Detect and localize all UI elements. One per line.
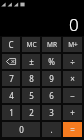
staticText: 1 bbox=[9, 107, 14, 118]
staticText: MC bbox=[26, 40, 37, 49]
staticText: 2 bbox=[29, 107, 34, 118]
staticText: C bbox=[8, 39, 14, 50]
button[interactable]: C bbox=[2, 37, 20, 52]
button[interactable]: % bbox=[42, 54, 61, 69]
button[interactable]: 1 bbox=[2, 105, 20, 120]
button[interactable]: M+ bbox=[63, 37, 82, 52]
button[interactable]: MC bbox=[22, 37, 40, 52]
button[interactable]: 9 bbox=[42, 71, 61, 86]
staticText: 5 bbox=[29, 90, 34, 101]
staticText: 0 bbox=[19, 124, 24, 135]
staticText: + bbox=[70, 107, 75, 118]
staticText: 3 bbox=[49, 107, 54, 118]
staticText: = bbox=[70, 124, 75, 135]
staticText: M+ bbox=[68, 40, 78, 49]
staticText: MR bbox=[47, 40, 57, 49]
button[interactable]: 2 bbox=[22, 105, 40, 120]
staticText: ± bbox=[29, 56, 34, 67]
button[interactable]: 5 bbox=[22, 88, 40, 103]
button[interactable]: 7 bbox=[2, 71, 20, 86]
button[interactable]: ± bbox=[22, 54, 40, 69]
staticText: 7 bbox=[9, 73, 14, 84]
staticText: × bbox=[70, 73, 75, 84]
staticText: 6 bbox=[49, 90, 54, 101]
button[interactable]: 0 bbox=[2, 122, 40, 137]
button[interactable]: ÷ bbox=[63, 54, 82, 69]
staticText: . bbox=[50, 124, 53, 135]
staticText: 0 bbox=[69, 13, 79, 36]
button[interactable]: Backspace bbox=[2, 54, 20, 69]
staticText: ÷ bbox=[70, 56, 75, 67]
button[interactable]: 6 bbox=[42, 88, 61, 103]
button[interactable]: 3 bbox=[42, 105, 61, 120]
button[interactable]: × bbox=[63, 71, 82, 86]
button[interactable]: MR bbox=[42, 37, 61, 52]
button[interactable]: + bbox=[63, 105, 82, 120]
button[interactable]: = bbox=[63, 122, 82, 137]
staticText: − bbox=[70, 90, 75, 101]
button[interactable]: 4 bbox=[2, 88, 20, 103]
staticText: % bbox=[48, 56, 55, 67]
button[interactable]: 8 bbox=[22, 71, 40, 86]
button[interactable]: − bbox=[63, 88, 82, 103]
staticText: 8 bbox=[29, 73, 34, 84]
button[interactable]: . bbox=[42, 122, 61, 137]
staticText: 4 bbox=[9, 90, 14, 101]
staticText: 9 bbox=[49, 73, 54, 84]
